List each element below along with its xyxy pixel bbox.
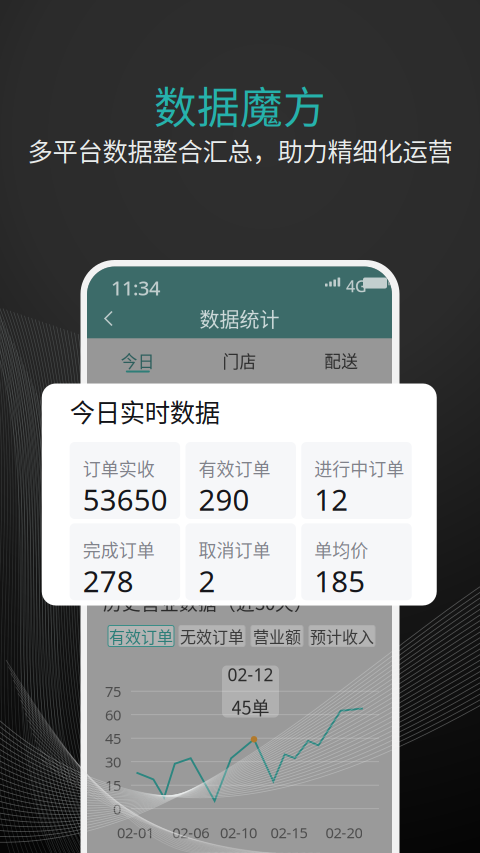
button[interactable]: 营业额 (251, 625, 303, 646)
staticText: 02-01 (117, 823, 154, 842)
staticText: 30 (105, 752, 121, 771)
staticText: 预计收入 (310, 624, 374, 648)
staticText: 多平台数据整合汇总，助力精细化运营 (27, 132, 452, 168)
staticText: 53650 (83, 480, 168, 519)
staticText: 进行中订单 (314, 455, 404, 481)
staticText: 0 (113, 799, 121, 818)
staticText: 有效订单 (109, 624, 173, 648)
staticText: 4G (346, 275, 367, 297)
button[interactable]: 预计收入 (309, 625, 375, 646)
staticText: 45单 (231, 694, 269, 720)
staticText: 历史营业数据（近30天） (103, 588, 313, 615)
staticText: 数据魔方 (154, 74, 326, 136)
staticText: 02-06 (172, 823, 209, 842)
staticText: 无效订单 (180, 624, 244, 648)
button[interactable]: 今日 (87, 338, 189, 384)
staticText: 订单实收 (83, 455, 155, 481)
staticText: 2 (198, 561, 215, 600)
staticText: 今日 (121, 348, 155, 372)
staticText: 45 (105, 728, 121, 748)
staticText: 12 (314, 480, 348, 519)
staticText: 有效订单 (198, 455, 270, 481)
staticText: 02-15 (270, 823, 307, 842)
staticText: 15 (105, 775, 121, 795)
staticText: 营业额 (253, 624, 301, 648)
staticText: 185 (314, 561, 365, 600)
staticText: 02-12 (227, 663, 273, 686)
staticText: 取消订单 (198, 536, 270, 562)
staticText: 门店 (222, 348, 256, 372)
staticText: 290 (198, 480, 249, 519)
staticText: 配送 (324, 348, 358, 372)
staticText: 02-10 (220, 823, 257, 842)
button[interactable]: 门店 (189, 338, 290, 384)
staticText: 数据统计 (199, 304, 279, 333)
button[interactable]: 有效订单 (108, 625, 174, 646)
staticText: 278 (83, 561, 134, 600)
button[interactable]: 无效订单 (179, 625, 245, 646)
staticText: 75 (105, 681, 121, 701)
button[interactable]: 返回 (99, 306, 129, 330)
staticText: 11:34 (111, 274, 160, 301)
staticText: 02-20 (325, 823, 362, 842)
staticText: 完成订单 (83, 536, 155, 562)
staticText: 单均价 (314, 536, 368, 562)
button[interactable]: 配送 (290, 338, 392, 384)
staticText: 今日实时数据 (70, 392, 220, 429)
staticText: 60 (105, 705, 121, 724)
